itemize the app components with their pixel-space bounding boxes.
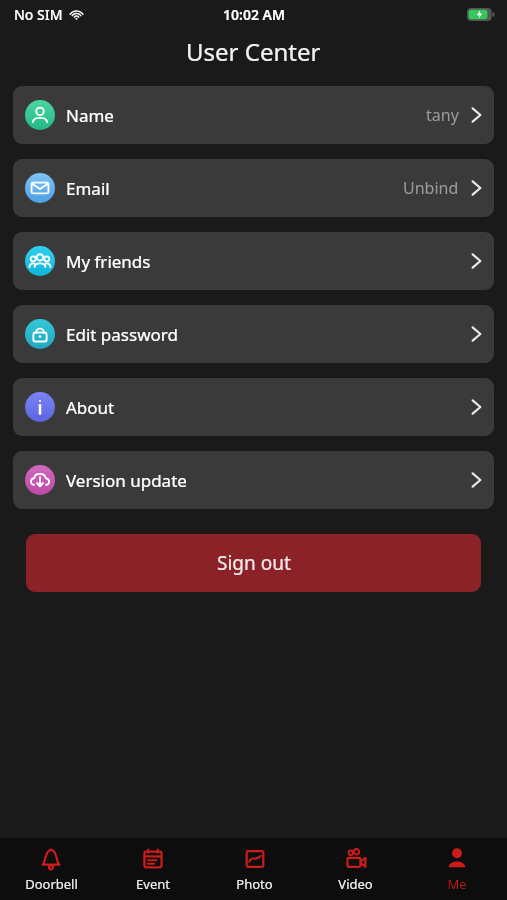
staticText: 10:02 AM [223, 5, 285, 24]
staticText: Doorbell [25, 875, 78, 893]
staticText: tany [426, 104, 459, 126]
staticText: Version update [66, 469, 187, 492]
button[interactable]: Video [305, 838, 406, 900]
staticText: Photo [236, 875, 273, 893]
staticText: Sign out [217, 550, 291, 576]
staticText: Event [136, 875, 170, 893]
button[interactable]: Sign out [26, 534, 481, 592]
button[interactable]: Version update [13, 451, 494, 509]
staticText: Email [66, 177, 110, 200]
button[interactable]: My friends [13, 232, 494, 290]
staticText: Video [338, 875, 373, 893]
staticText: User Center [186, 35, 321, 68]
staticText: Me [447, 875, 467, 893]
staticText: Name [66, 104, 114, 127]
button[interactable]: Me [406, 838, 507, 900]
staticText: My friends [66, 250, 151, 273]
staticText: Unbind [403, 177, 459, 199]
button[interactable]: Email [13, 159, 494, 217]
button[interactable]: Edit password [13, 305, 494, 363]
button[interactable]: Doorbell [0, 838, 102, 900]
staticText: No SIM [14, 5, 63, 24]
staticText: About [66, 396, 115, 419]
button[interactable]: Name [13, 86, 494, 144]
button[interactable]: About [13, 378, 494, 436]
staticText: Edit password [66, 323, 178, 346]
button[interactable]: Photo [204, 838, 305, 900]
button[interactable]: Event [102, 838, 204, 900]
